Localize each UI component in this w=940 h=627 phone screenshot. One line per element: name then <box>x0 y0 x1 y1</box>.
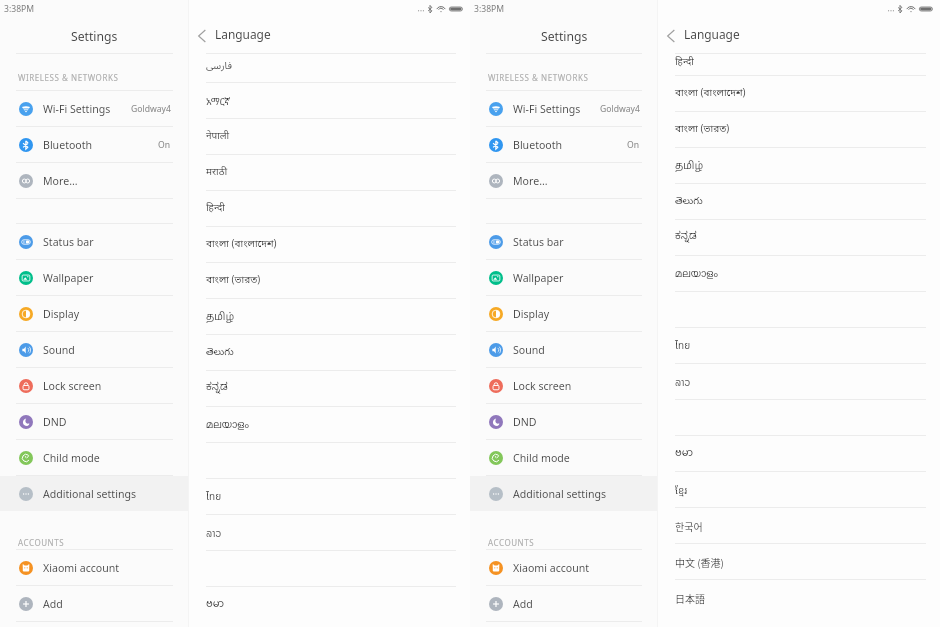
button[interactable]: Back <box>658 23 684 49</box>
button[interactable]: Sound <box>470 332 658 367</box>
button[interactable]: Child mode <box>0 440 189 475</box>
button[interactable]: മലയാളം <box>658 256 940 291</box>
button[interactable]: Add <box>0 586 189 621</box>
button[interactable]: Lock screen <box>0 368 189 403</box>
button[interactable]: DND <box>470 404 658 439</box>
staticText: Lock screen <box>43 379 102 393</box>
button[interactable]: ဗမာ <box>658 436 940 471</box>
button[interactable]: Bluetooth <box>0 127 189 162</box>
staticText: Status bar <box>513 235 564 249</box>
button[interactable]: ไทย <box>658 328 940 363</box>
staticText: മലയാളം <box>206 419 249 431</box>
staticText: తెలుగు <box>206 346 234 360</box>
button[interactable]: தமிழ் <box>189 299 470 334</box>
staticText: मराठी <box>206 166 228 179</box>
staticText: Wallpaper <box>43 271 94 285</box>
button[interactable]: Additional settings <box>470 476 658 511</box>
button[interactable]: Additional settings <box>0 476 189 511</box>
staticText: हिन्दी <box>206 202 225 215</box>
staticText: ဗမာ <box>675 443 694 465</box>
button[interactable]: Xiaomi account <box>0 550 189 585</box>
button[interactable]: Display <box>0 296 189 331</box>
staticText: Wi-Fi Settings <box>513 102 581 116</box>
staticText: বাংলা (ভারত) <box>206 274 261 287</box>
staticText: فارسی <box>206 55 232 76</box>
staticText: DND <box>43 415 67 429</box>
staticText: ಕನ್ನಡ <box>206 382 228 395</box>
button[interactable]: 中文 (香港) <box>658 544 940 579</box>
staticText: Add <box>513 597 533 611</box>
staticText: മലയാളം <box>675 268 718 280</box>
button[interactable]: मराठी <box>189 155 470 190</box>
button[interactable]: More... <box>470 163 658 198</box>
button[interactable]: ಕನ್ನಡ <box>189 371 470 406</box>
button[interactable]: Add <box>470 586 658 621</box>
button[interactable]: ಕನ್ನಡ <box>658 220 940 255</box>
staticText: 한국어 <box>675 519 703 533</box>
staticText: DND <box>513 415 537 429</box>
staticText: Settings <box>71 28 118 45</box>
button[interactable]: Status bar <box>470 224 658 259</box>
button[interactable]: বাংলা (ভারত) <box>189 263 470 298</box>
button[interactable]: Display <box>470 296 658 331</box>
button[interactable]: ไทย <box>189 479 470 514</box>
button[interactable]: ລາວ <box>189 515 470 550</box>
staticText: አማርኛ <box>206 94 231 108</box>
staticText: On <box>158 139 171 151</box>
button[interactable]: മലയാളം <box>189 407 470 442</box>
button[interactable]: Bluetooth <box>470 127 658 162</box>
button[interactable]: हिन्दी <box>658 54 940 75</box>
button[interactable]: বাংলা (বাংলাদেশ) <box>189 227 470 262</box>
button[interactable]: አማርኛ <box>189 83 470 118</box>
button[interactable]: Sound <box>0 332 189 367</box>
staticText: On <box>627 139 640 151</box>
button[interactable]: DND <box>0 404 189 439</box>
staticText: 3:38PM <box>4 3 35 15</box>
button[interactable]: ဗမာ <box>189 587 470 622</box>
staticText: ಕನ್ನಡ <box>675 231 697 244</box>
button[interactable]: Wi-Fi Settings <box>0 91 189 126</box>
button[interactable]: Wallpaper <box>0 260 189 295</box>
button[interactable]: ລາວ <box>658 364 940 399</box>
staticText: 中文 (香港) <box>675 555 724 569</box>
button[interactable]: বাংলা (বাংলাদেশ) <box>658 76 940 111</box>
button[interactable]: Back <box>189 23 215 49</box>
button[interactable]: More... <box>0 163 189 198</box>
button[interactable]: Xiaomi account <box>470 550 658 585</box>
button[interactable]: 한국어 <box>658 508 940 543</box>
button[interactable]: हिन्दी <box>189 191 470 226</box>
button[interactable]: বাংলা (ভারত) <box>658 112 940 147</box>
button[interactable]: नेपाली <box>189 119 470 154</box>
button[interactable]: Status bar <box>0 224 189 259</box>
staticText: Sound <box>43 343 75 357</box>
staticText: 日本語 <box>675 591 705 605</box>
button[interactable]: 日本語 <box>658 580 940 615</box>
button[interactable]: தமிழ் <box>658 148 940 183</box>
staticText: Wi-Fi Settings <box>43 102 111 116</box>
staticText: WIRELESS & NETWORKS <box>488 72 589 83</box>
staticText: Goldway4 <box>131 103 171 115</box>
staticText: Lock screen <box>513 379 572 393</box>
button[interactable]: Wallpaper <box>470 260 658 295</box>
staticText: Settings <box>541 28 588 45</box>
button[interactable]: తెలుగు <box>189 335 470 370</box>
button[interactable]: فارسی <box>189 54 470 82</box>
staticText: ACCOUNTS <box>18 537 65 548</box>
button[interactable]: Child mode <box>470 440 658 475</box>
staticText: Language <box>215 26 271 42</box>
button[interactable]: తెలుగు <box>658 184 940 219</box>
staticText: ខ្មែរ <box>675 483 688 497</box>
staticText: தமிழ் <box>675 160 704 172</box>
button[interactable]: Wi-Fi Settings <box>470 91 658 126</box>
staticText: Xiaomi account <box>513 561 590 575</box>
button[interactable]: ខ្មែរ <box>658 472 940 507</box>
staticText: हिन्दी <box>675 56 694 69</box>
staticText: Status bar <box>43 235 94 249</box>
staticText: ລາວ <box>206 525 222 541</box>
staticText: ဗမာ <box>206 594 225 616</box>
button[interactable]: Lock screen <box>470 368 658 403</box>
